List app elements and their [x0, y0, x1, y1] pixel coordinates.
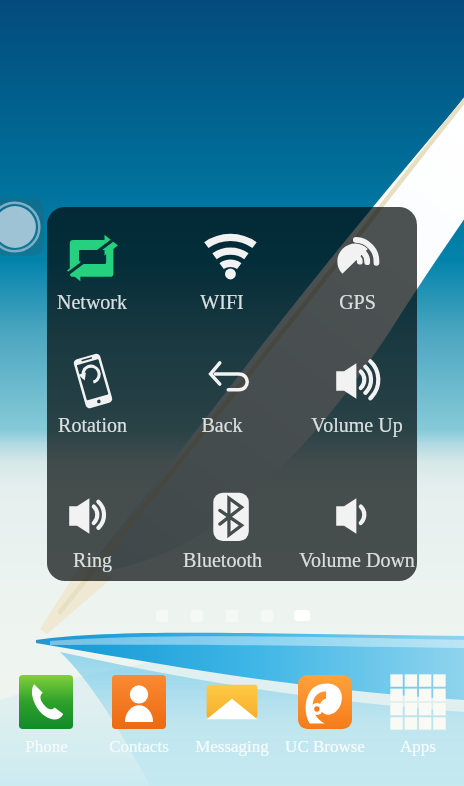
staticText: Contacts [109, 737, 169, 756]
button[interactable] [47, 217, 154, 325]
staticText: GPS [339, 291, 376, 313]
staticText: Volume Down [299, 549, 415, 571]
staticText: Back [201, 414, 243, 436]
staticText: Apps [400, 737, 436, 756]
button[interactable] [299, 475, 417, 581]
button[interactable] [170, 475, 292, 581]
button[interactable]: Current page [294, 610, 310, 621]
staticText: Rotation [58, 414, 127, 436]
staticText: Phone [25, 737, 68, 756]
staticText: Messaging [195, 737, 269, 756]
staticText: WIFI [200, 291, 244, 313]
button[interactable]: Apps [372, 670, 464, 770]
button[interactable]: UC Browse [279, 670, 371, 770]
button[interactable] [170, 217, 292, 325]
staticText: UC Browse [285, 737, 365, 756]
staticText: Ring [73, 549, 112, 571]
button[interactable]: Messaging [186, 670, 278, 770]
staticText: Network [57, 291, 127, 313]
button[interactable]: Contacts [93, 670, 185, 770]
staticText: Volume Up [311, 414, 403, 436]
button[interactable] [170, 340, 292, 448]
button[interactable] [47, 475, 154, 581]
button[interactable] [299, 340, 417, 448]
button[interactable]: Phone [0, 670, 92, 770]
staticText: Bluetooth [183, 549, 262, 571]
button[interactable] [47, 340, 154, 448]
button[interactable] [299, 217, 417, 325]
button[interactable]: Widget [0, 198, 44, 256]
